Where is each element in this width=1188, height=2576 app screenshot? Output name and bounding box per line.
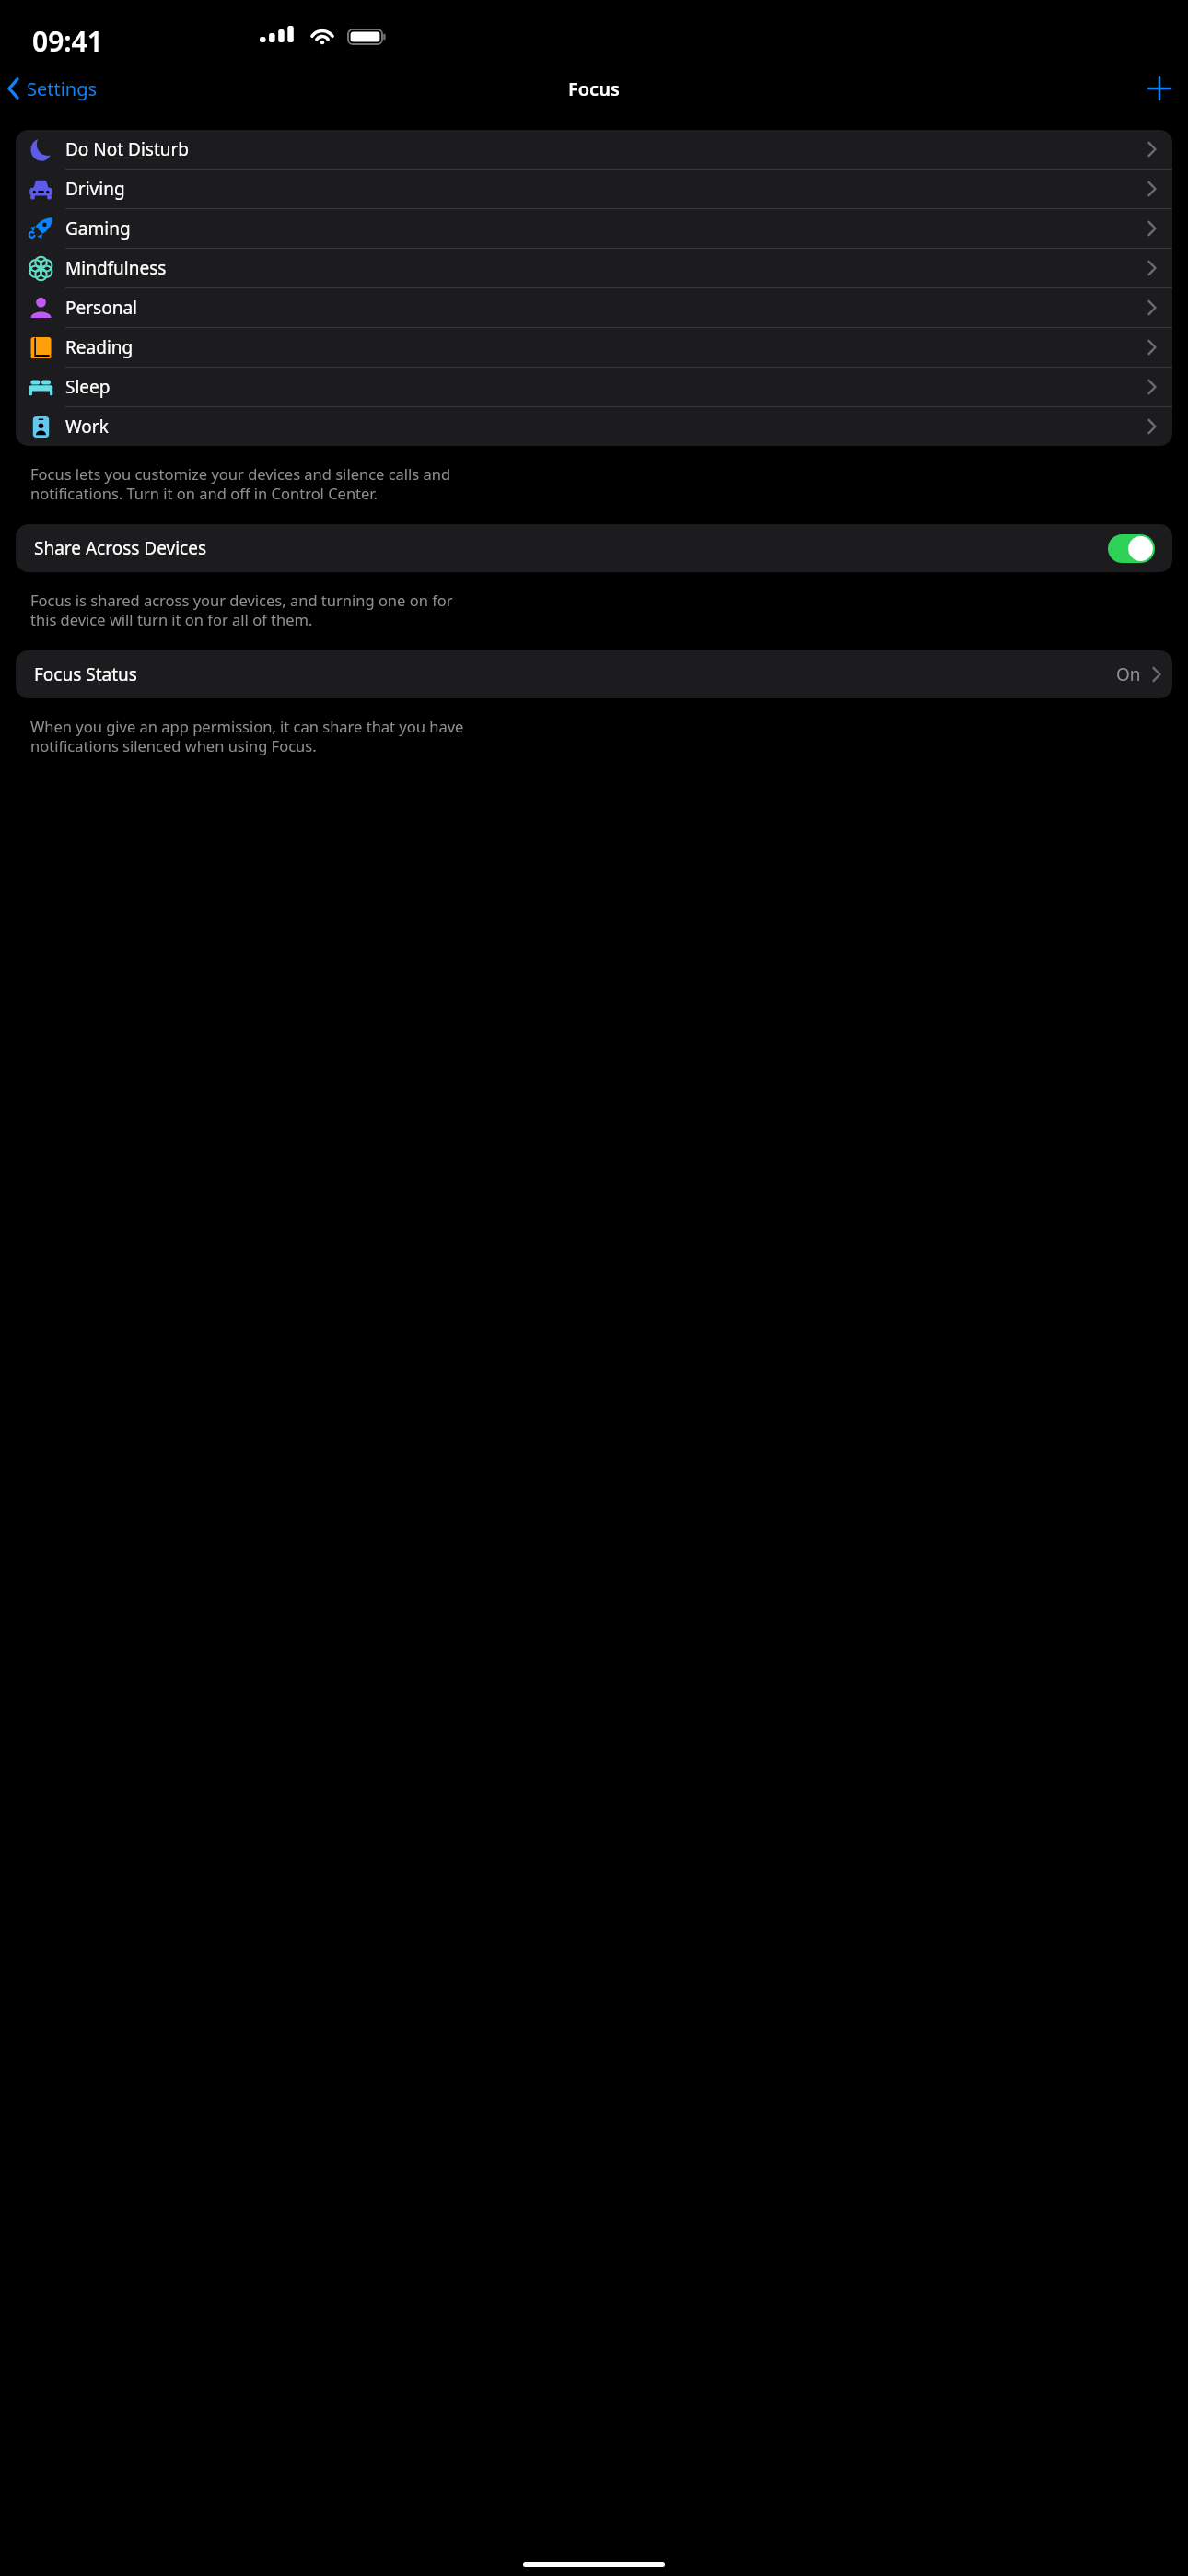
- button[interactable]: Work: [16, 407, 1172, 446]
- staticText: Reading: [65, 335, 134, 359]
- staticText: Focus is shared across your devices, and…: [30, 590, 453, 630]
- staticText: On: [1116, 662, 1141, 686]
- staticText: Sleep: [65, 375, 111, 399]
- staticText: When you give an app permission, it can …: [30, 716, 464, 756]
- staticText: Work: [65, 415, 109, 439]
- button[interactable]: Add Focus: [1131, 71, 1188, 106]
- staticText: Focus lets you customize your devices an…: [30, 463, 451, 504]
- staticText: 09:41: [32, 22, 103, 60]
- staticText: Driving: [65, 177, 125, 201]
- staticText: Personal: [65, 296, 137, 320]
- staticText: Focus Status: [34, 662, 1116, 686]
- button[interactable]: Personal: [16, 288, 1172, 327]
- button[interactable]: Do Not Disturb: [16, 130, 1172, 169]
- staticText: Focus: [568, 76, 620, 101]
- button[interactable]: Settings: [0, 71, 107, 106]
- staticText: Gaming: [65, 217, 131, 240]
- button[interactable]: Driving: [16, 170, 1172, 208]
- staticText: Settings: [27, 76, 98, 101]
- button[interactable]: Focus Status: [16, 650, 1172, 698]
- staticText: Mindfulness: [65, 256, 167, 280]
- button[interactable]: Reading: [16, 328, 1172, 367]
- button[interactable]: Share Across Devices: [16, 524, 1172, 572]
- staticText: Do Not Disturb: [65, 137, 190, 161]
- button[interactable]: Gaming: [16, 209, 1172, 248]
- button[interactable]: Mindfulness: [16, 249, 1172, 287]
- button[interactable]: Sleep: [16, 368, 1172, 406]
- staticText: Share Across Devices: [34, 536, 207, 560]
